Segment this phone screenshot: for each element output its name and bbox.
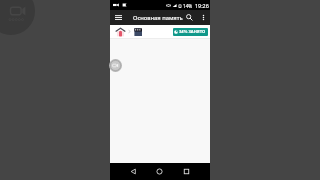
button[interactable]: 34% ЗАНЯТО — [173, 28, 208, 36]
staticText: 19:26 — [195, 2, 209, 9]
button[interactable]: Recent apps — [173, 163, 200, 180]
staticText: 34% ЗАНЯТО — [179, 29, 206, 35]
staticText: 14% — [183, 3, 193, 9]
button[interactable]: Home — [115, 26, 126, 37]
button[interactable]: Search — [183, 10, 196, 25]
button[interactable]: More options — [196, 10, 210, 25]
button[interactable]: Home — [146, 163, 173, 180]
staticText: Основная память — [133, 14, 183, 22]
button[interactable]: Open navigation drawer — [110, 10, 126, 25]
button[interactable]: Screen recorder — [109, 59, 122, 72]
button[interactable]: Back — [120, 163, 146, 180]
button[interactable]: SD card — [133, 27, 143, 37]
